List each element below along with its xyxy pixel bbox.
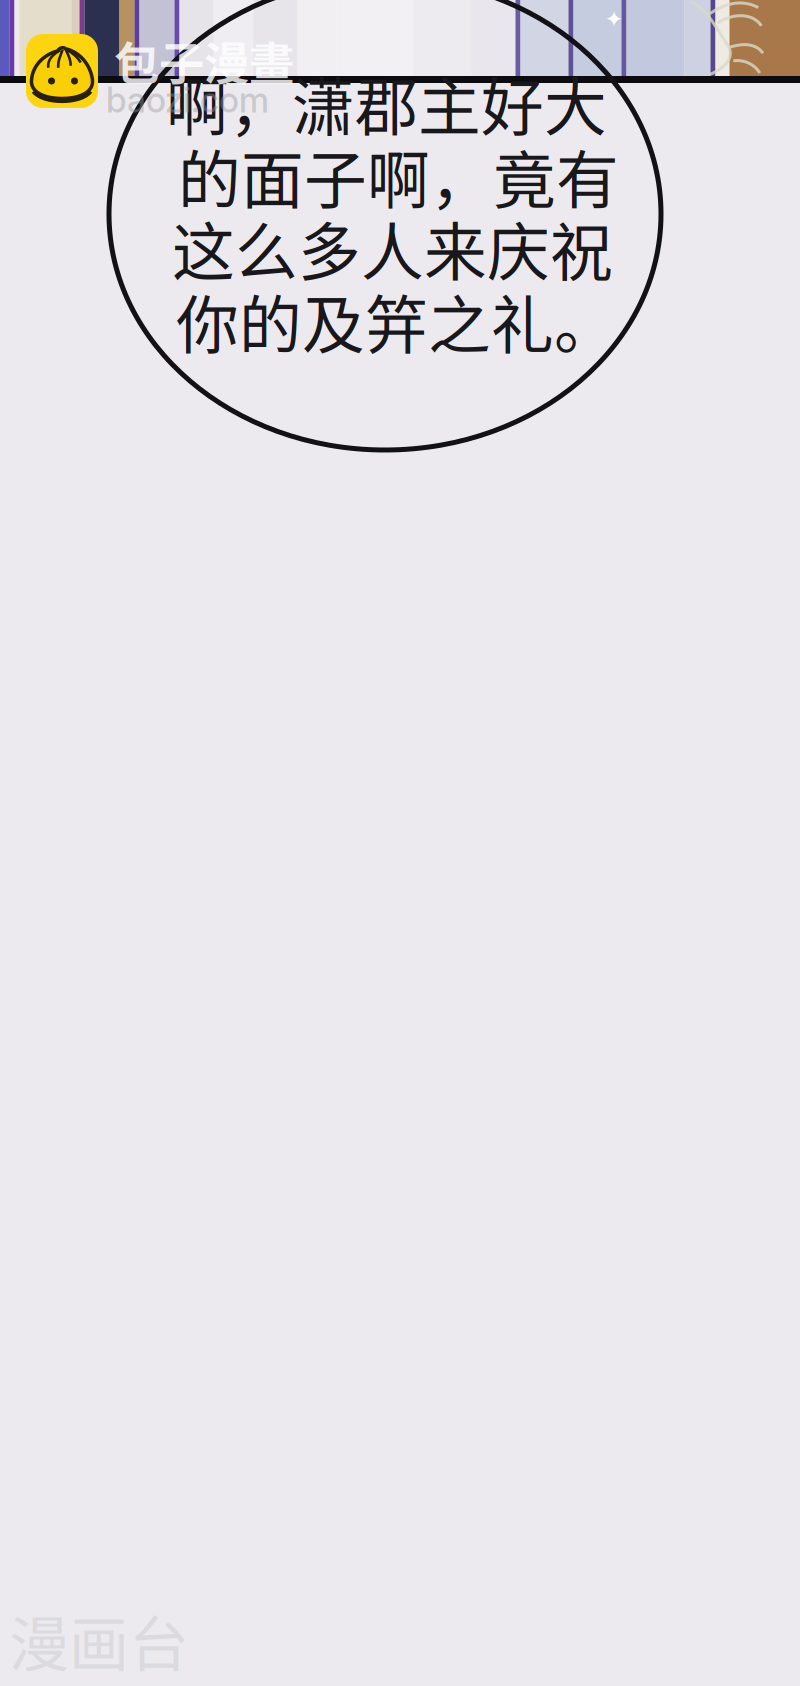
staticText: 漫画台 xyxy=(9,1597,189,1684)
staticText: ✦ xyxy=(604,6,623,32)
staticText: 啊，潇郡主好大 xyxy=(166,57,607,148)
staticText: 包子漫畫 xyxy=(114,28,294,94)
staticText: 的面子啊，竟有 xyxy=(178,130,619,221)
staticText: 你的及笄之礼。 xyxy=(176,275,617,366)
staticText: baozi.com xyxy=(106,79,269,121)
staticText: 这么多人来庆祝 xyxy=(172,202,613,293)
button[interactable]: 包子漫畫 xyxy=(26,34,98,108)
